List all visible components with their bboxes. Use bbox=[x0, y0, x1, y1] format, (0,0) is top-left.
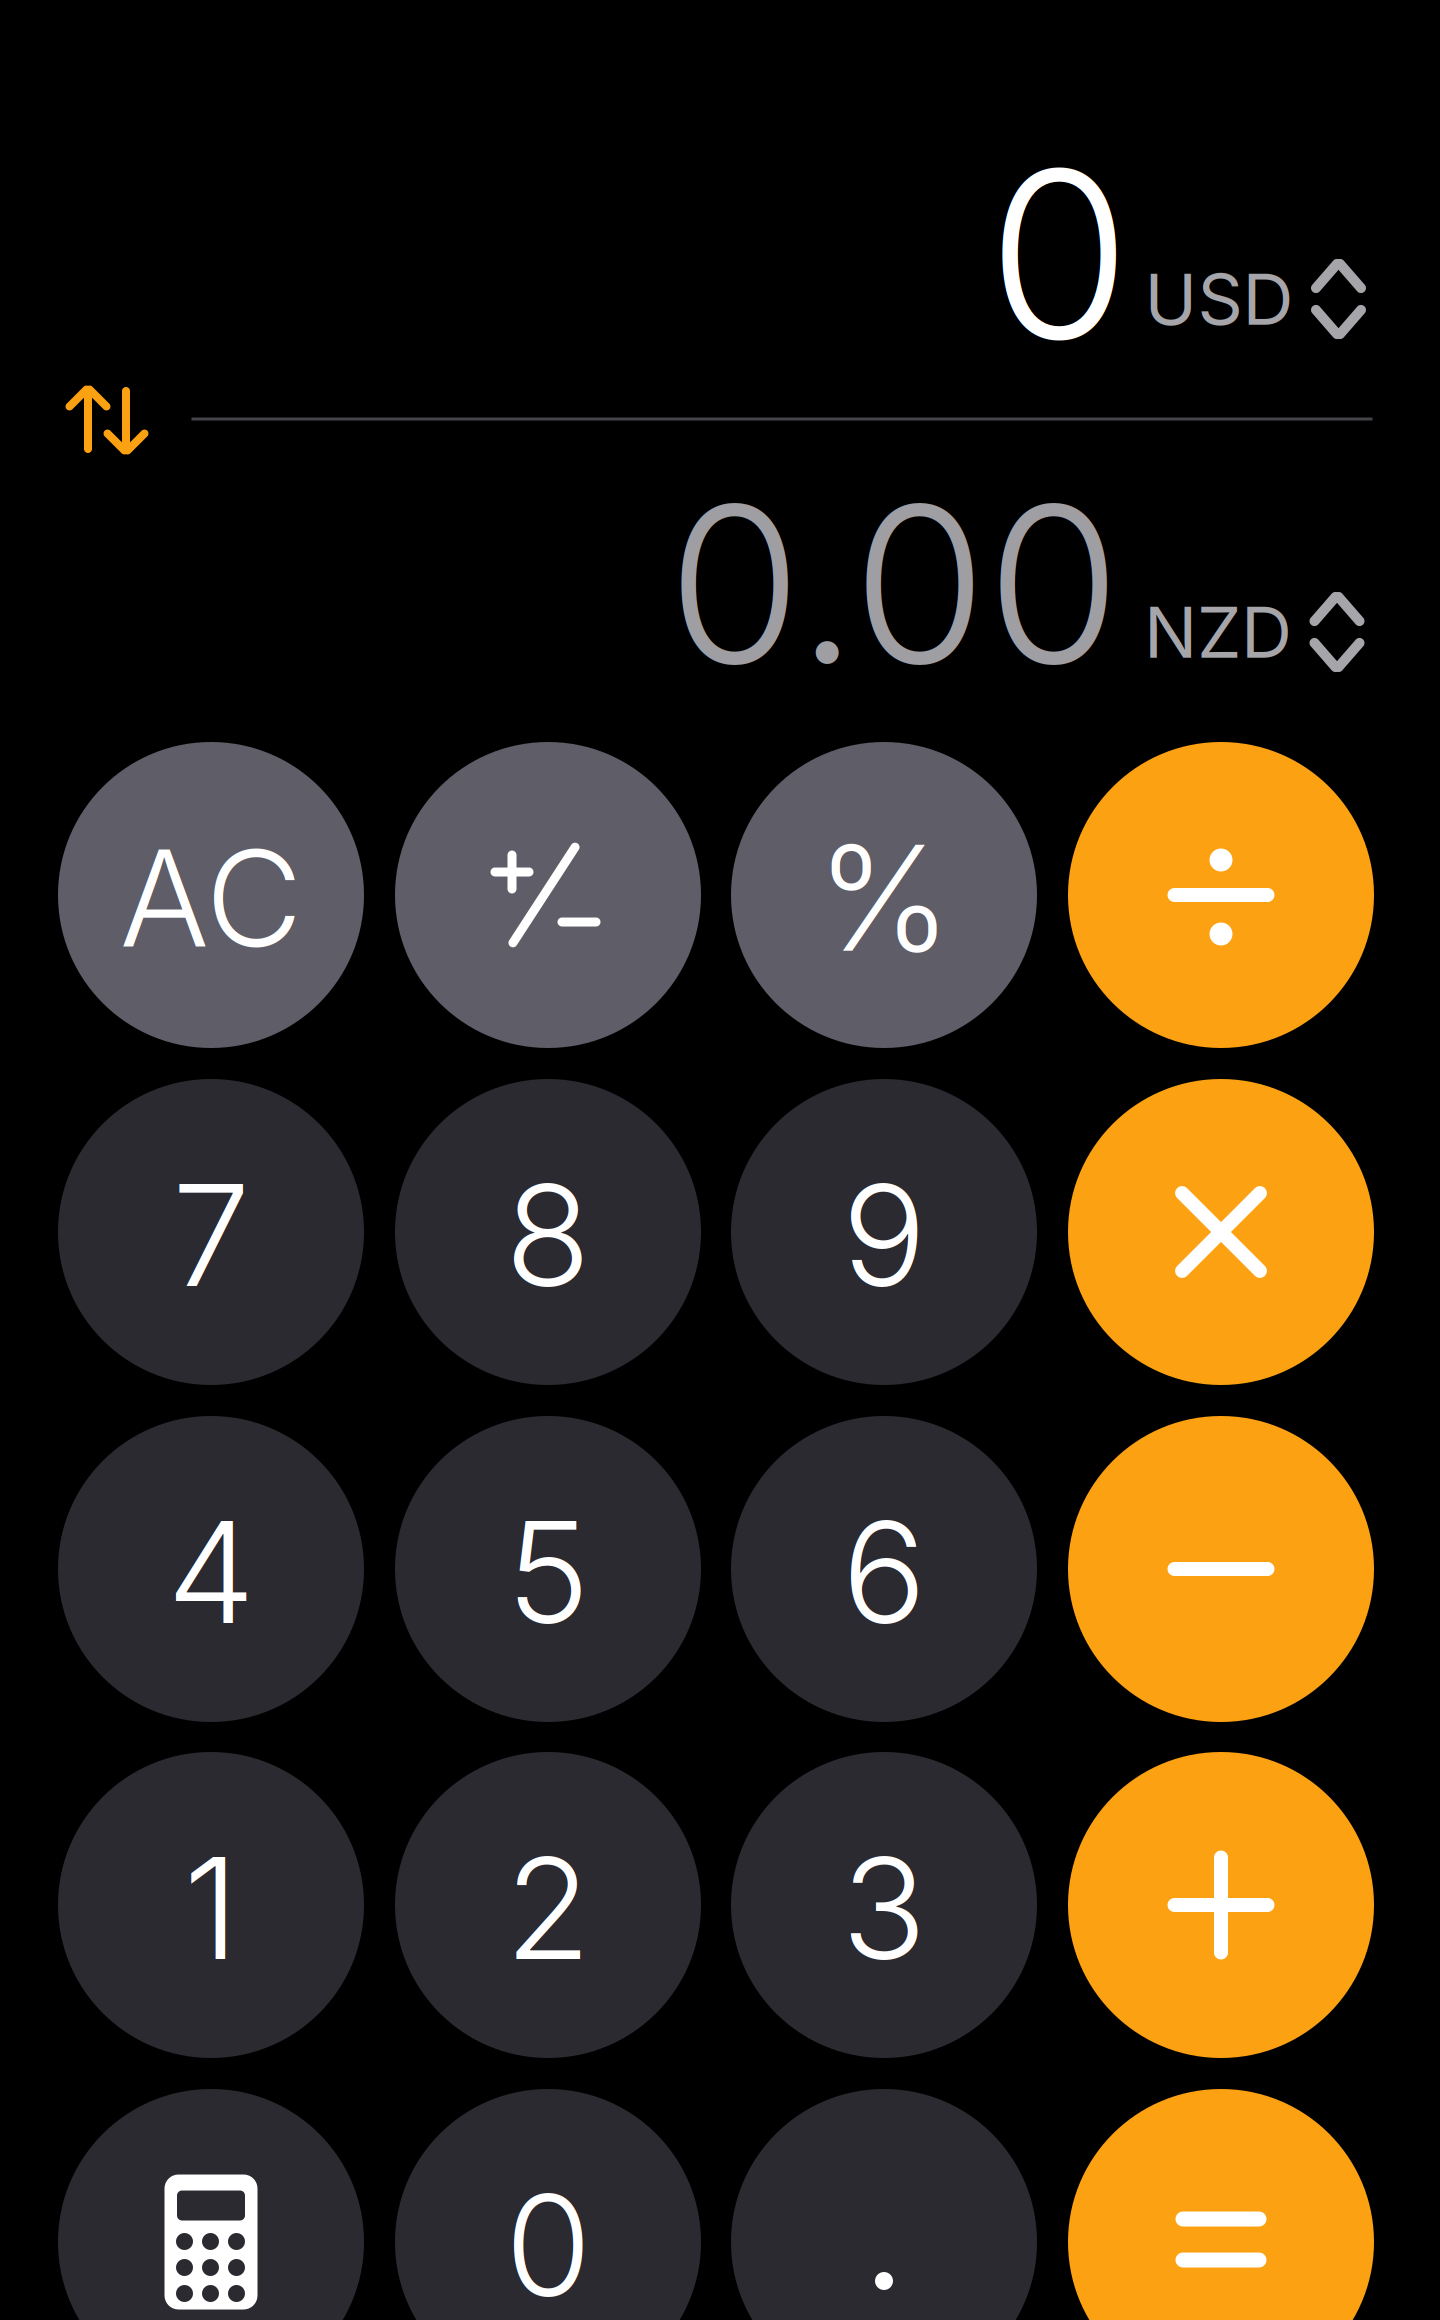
staticText: 2 bbox=[505, 1823, 591, 1993]
staticText: 1 bbox=[183, 1823, 238, 1993]
button[interactable]: 4 bbox=[58, 1416, 364, 1722]
button[interactable]: 7 bbox=[58, 1079, 364, 1385]
button[interactable]: Decimal point bbox=[731, 2089, 1037, 2320]
staticText: 0 bbox=[987, 114, 1130, 394]
staticText: % bbox=[816, 810, 952, 986]
staticText: USD bbox=[1144, 256, 1293, 342]
staticText: NZD bbox=[1144, 589, 1292, 675]
button[interactable]: Equals bbox=[1068, 2089, 1374, 2320]
button[interactable]: Swap currencies bbox=[64, 384, 150, 454]
staticText: 3 bbox=[841, 1823, 926, 1993]
button[interactable]: AC bbox=[58, 742, 364, 1048]
button[interactable]: 5 bbox=[395, 1416, 701, 1722]
staticText: 6 bbox=[842, 1487, 926, 1657]
staticText: 5 bbox=[506, 1487, 589, 1657]
button[interactable]: Subtract bbox=[1068, 1416, 1374, 1722]
button[interactable]: 1 bbox=[58, 1752, 364, 2058]
button[interactable]: Change target currency bbox=[1144, 577, 1366, 687]
button[interactable]: % bbox=[731, 742, 1037, 1048]
staticText: 8 bbox=[505, 1150, 591, 1320]
staticText: 4 bbox=[167, 1487, 255, 1657]
button[interactable]: 0 bbox=[395, 2089, 701, 2320]
button[interactable]: 6 bbox=[731, 1416, 1037, 1722]
button[interactable]: Toggle sign bbox=[395, 742, 701, 1048]
button[interactable]: 8 bbox=[395, 1079, 701, 1385]
staticText: 0.00 bbox=[667, 452, 1120, 715]
staticText: 0 bbox=[505, 2160, 591, 2320]
button[interactable]: Add bbox=[1068, 1752, 1374, 2058]
button[interactable]: Change source currency bbox=[1144, 244, 1367, 354]
staticText: AC bbox=[119, 817, 302, 979]
button[interactable]: 2 bbox=[395, 1752, 701, 2058]
button[interactable]: Calculator bbox=[58, 2089, 364, 2320]
button[interactable]: Divide bbox=[1068, 742, 1374, 1048]
button[interactable]: 3 bbox=[731, 1752, 1037, 2058]
staticText: 9 bbox=[842, 1150, 926, 1320]
button[interactable]: Amount 0 US dollars bbox=[949, 124, 1169, 384]
button[interactable]: Multiply bbox=[1068, 1079, 1374, 1385]
button[interactable]: 9 bbox=[731, 1079, 1037, 1385]
button[interactable]: Converted amount 0.00 New Zealand dollar… bbox=[644, 459, 1144, 709]
staticText: 7 bbox=[172, 1150, 250, 1320]
